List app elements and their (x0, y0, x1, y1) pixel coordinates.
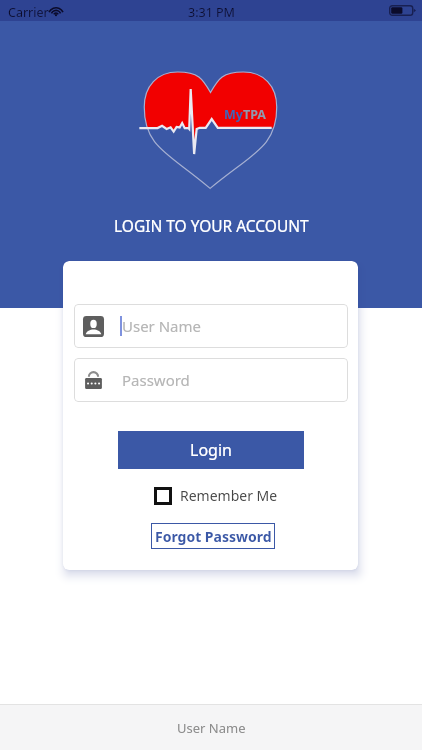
staticText: LOGIN TO YOUR ACCOUNT (114, 215, 309, 236)
button[interactable]: User Name (74, 304, 348, 348)
staticText: Login (190, 439, 232, 461)
staticText: Password (122, 370, 190, 390)
button[interactable]: Remember Me (154, 486, 358, 505)
staticText: Carrier (8, 4, 49, 21)
button[interactable]: Forgot Password (151, 523, 275, 549)
staticText: User Name (177, 719, 246, 737)
staticText: Remember Me (180, 486, 278, 505)
button[interactable]: Login (118, 431, 304, 469)
staticText: 3:31 PM (188, 4, 235, 21)
staticText: TPA (243, 106, 267, 123)
staticText: User Name (122, 316, 202, 336)
staticText: My (224, 106, 243, 123)
staticText: Forgot Password (155, 527, 272, 546)
button[interactable]: User Name (0, 705, 422, 750)
button[interactable]: Password (74, 358, 348, 402)
